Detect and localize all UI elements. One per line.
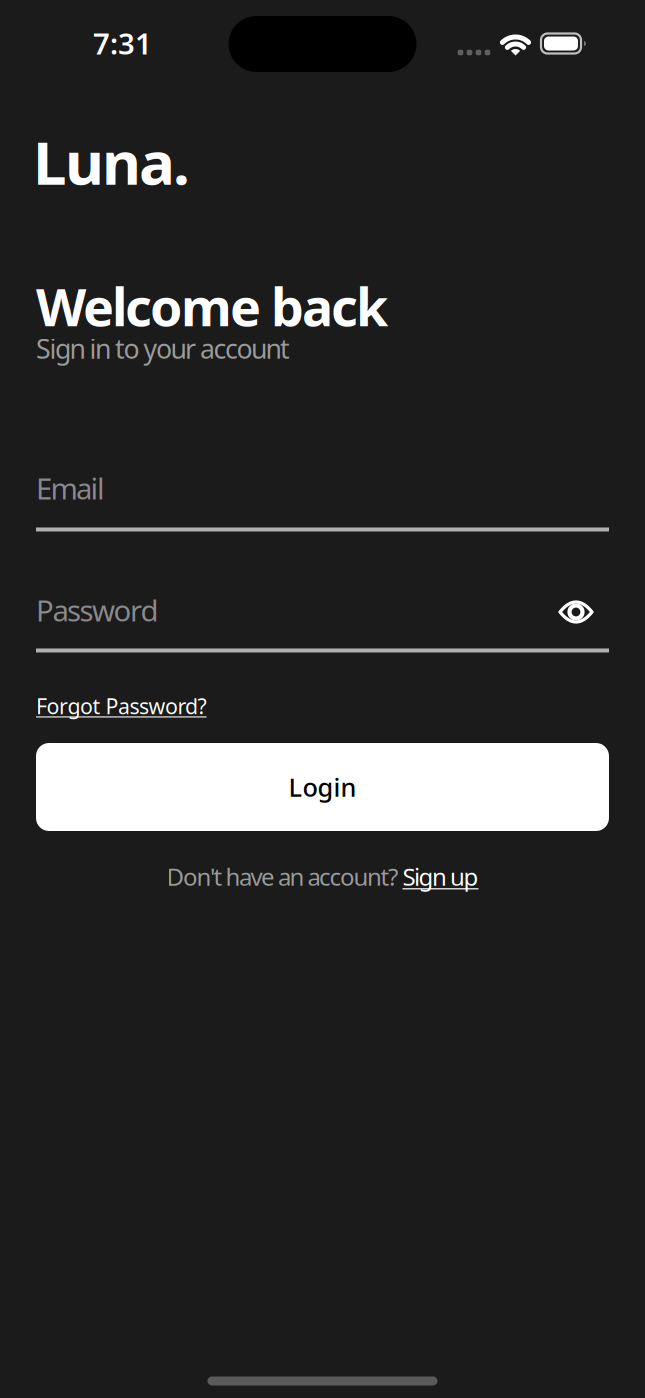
button[interactable]: Sign up bbox=[402, 861, 478, 892]
staticText: Login bbox=[288, 770, 356, 804]
button[interactable]: Show password bbox=[558, 599, 594, 625]
staticText: Email bbox=[36, 468, 105, 507]
button[interactable]: Password bbox=[36, 590, 609, 652]
staticText: Sign in to your account bbox=[36, 331, 290, 366]
staticText: Forgot Password? bbox=[36, 692, 206, 720]
button[interactable]: Login bbox=[36, 743, 609, 831]
button[interactable]: Email bbox=[36, 468, 609, 531]
staticText: 7:31 bbox=[93, 23, 152, 62]
staticText: Welcome back bbox=[36, 271, 388, 341]
staticText: Don't have an account? bbox=[166, 861, 402, 892]
staticText: Password bbox=[36, 590, 158, 629]
staticText: Sign up bbox=[402, 861, 478, 892]
staticText: Luna. bbox=[33, 122, 190, 201]
button[interactable]: Forgot Password? bbox=[36, 692, 206, 720]
